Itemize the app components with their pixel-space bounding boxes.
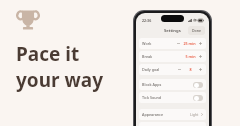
staticText: 22:36: [142, 18, 152, 23]
staticText: Appearance: [142, 112, 164, 117]
button[interactable]: Block Apps toggle: [193, 82, 203, 88]
staticText: Break: [142, 54, 153, 59]
button[interactable]: Work: [139, 38, 206, 49]
staticText: Tick Sound: [142, 95, 162, 100]
button[interactable]: Increase Work: [198, 41, 203, 46]
staticText: Settings: [164, 28, 181, 34]
button[interactable]: Block Apps: [139, 79, 206, 90]
button[interactable]: Done: [188, 26, 205, 35]
staticText: Done: [192, 28, 201, 33]
staticText: your way: [16, 67, 104, 93]
button[interactable]: Daily goal: [139, 64, 206, 75]
staticText: Daily goal: [142, 67, 160, 72]
button[interactable]: Tick Sound toggle: [193, 95, 203, 101]
button[interactable]: Tick Sound: [139, 92, 206, 103]
button[interactable]: Decrease Daily goal: [177, 67, 182, 72]
button[interactable]: Decrease Work: [176, 41, 181, 46]
button[interactable]: Appearance: [139, 109, 206, 120]
button[interactable]: Break: [139, 51, 206, 62]
other: Trophy: [17, 9, 39, 30]
staticText: 25 min: [183, 41, 196, 46]
staticText: Pace it: [16, 41, 80, 67]
button[interactable]: Increase Daily goal: [198, 67, 203, 72]
button[interactable]: Increase Break: [198, 54, 203, 59]
staticText: 8: [189, 67, 192, 72]
staticText: Block Apps: [142, 82, 162, 87]
staticText: Light: [190, 112, 199, 117]
staticText: 5 min: [185, 54, 196, 59]
staticText: Work: [142, 41, 152, 46]
